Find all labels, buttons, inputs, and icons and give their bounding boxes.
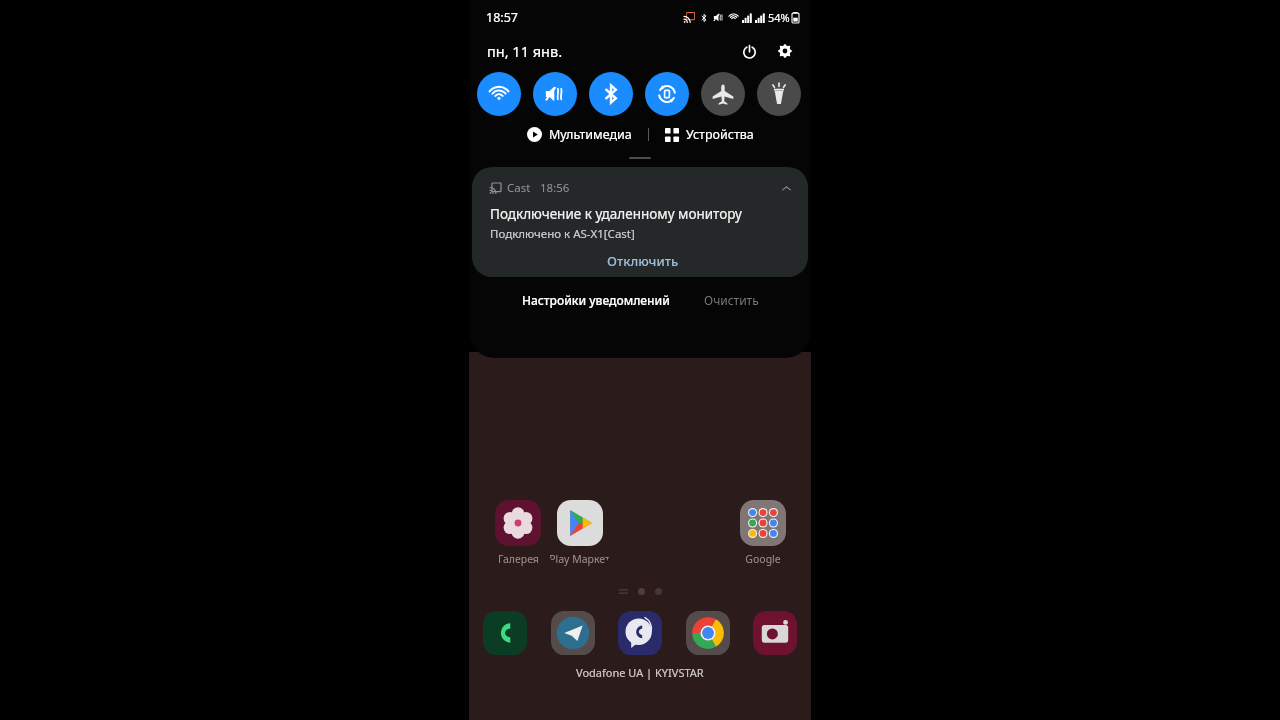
button[interactable]: Sound mode [533, 72, 577, 116]
staticText: Vodafone UA | KYIVSTAR [576, 665, 704, 680]
staticText: 18:57 [486, 9, 518, 26]
staticText: Подключение к удаленному монитору [490, 205, 742, 223]
staticText: Cast [507, 180, 531, 196]
button[interactable]: Настройки уведомлений [516, 289, 676, 311]
staticText: Подключено к AS-X1[Cast] [490, 226, 635, 242]
staticText: 54% [768, 10, 790, 25]
staticText: Мультимедиа [549, 126, 632, 143]
button[interactable]: Viber [616, 609, 664, 657]
button[interactable]: Google [732, 500, 793, 566]
button[interactable]: Устройства [661, 122, 758, 147]
button[interactable]: Chrome [684, 609, 732, 657]
button[interactable]: Bluetooth [589, 72, 633, 116]
button[interactable]: Play Маркет [549, 500, 610, 566]
staticText: Google [745, 552, 781, 566]
button[interactable]: Collapse [776, 178, 796, 198]
button[interactable]: Power [735, 37, 763, 65]
button[interactable]: Cast [472, 167, 808, 277]
button[interactable]: Мультимедиа [523, 122, 636, 147]
button[interactable]: Camera [751, 609, 799, 657]
staticText: 18:56 [540, 180, 570, 196]
button[interactable]: Settings [771, 37, 799, 65]
staticText: Отключить [607, 252, 679, 270]
button[interactable]: Phone [481, 609, 529, 657]
staticText: Настройки уведомлений [522, 292, 670, 308]
button[interactable]: Auto rotate [645, 72, 689, 116]
button[interactable]: Airplane mode [701, 72, 745, 116]
staticText: Галерея [498, 552, 539, 566]
button[interactable]: Очистить [698, 289, 765, 311]
button[interactable]: Wi-Fi [477, 72, 521, 116]
button[interactable]: Telegram [549, 609, 597, 657]
staticText: Play Маркет [549, 552, 610, 566]
button[interactable]: Отключить [490, 250, 796, 272]
staticText: Устройства [686, 126, 754, 143]
staticText: пн, 11 янв. [487, 41, 563, 61]
button[interactable]: Галерея [487, 500, 549, 566]
button[interactable]: Flashlight [757, 72, 801, 116]
staticText: Очистить [704, 292, 759, 308]
